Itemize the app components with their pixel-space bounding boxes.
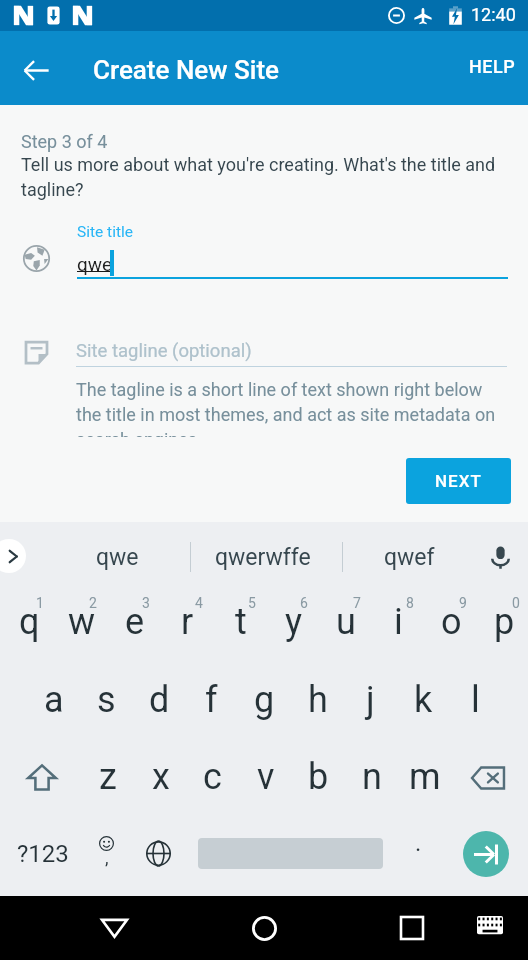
button[interactable]: r [161,576,214,653]
staticText: b [308,756,329,798]
button[interactable] [190,818,390,888]
staticText: HELP [469,56,516,77]
staticText: NEXT [435,471,482,491]
button[interactable]: Switch keyboard [472,910,508,946]
staticText: v [257,756,275,798]
staticText: i [394,601,403,643]
button[interactable]: NEXT [406,458,511,504]
button[interactable]: Change language [134,818,182,888]
button[interactable]: qwerwffe [203,534,323,580]
button[interactable]: . [395,814,441,884]
staticText: j [366,679,375,721]
staticText: , [105,847,109,868]
button[interactable]: Home [246,910,282,946]
staticText: Site title [77,223,134,241]
button[interactable]: Recent apps [394,910,430,946]
staticText: c [203,756,222,798]
button[interactable]: qwef [349,534,469,580]
staticText: q [19,601,40,643]
staticText: f [205,679,218,721]
staticText: t [235,601,247,643]
staticText: x [152,756,170,798]
button[interactable]: l [449,656,502,733]
staticText: k [414,679,433,721]
button[interactable]: j [344,656,397,733]
button[interactable]: i [372,576,425,653]
button[interactable]: c [186,733,239,810]
staticText: The tagline is a short line of text show… [76,379,496,437]
button[interactable]: v [239,733,292,810]
staticText: e [125,601,145,643]
staticText: ?123 [17,840,69,868]
staticText: w [68,601,96,643]
button[interactable]: Emoji [82,819,130,889]
button[interactable]: k [397,656,450,733]
button[interactable]: Voice input [479,536,521,578]
staticText: h [308,679,328,721]
button[interactable]: HELP [461,50,524,83]
staticText: g [254,679,275,721]
button[interactable]: n [345,733,398,810]
staticText: 8 [406,595,414,611]
staticText: s [97,679,116,721]
staticText: qwef [384,544,435,571]
staticText: m [409,756,441,798]
button[interactable]: b [292,733,345,810]
button[interactable]: y [267,576,320,653]
button[interactable]: u [319,576,372,653]
button[interactable]: s [80,656,133,733]
staticText: Tell us more about what you're creating.… [21,154,511,201]
button[interactable]: z [81,733,134,810]
staticText: 2 [89,595,97,611]
button[interactable]: a [27,656,80,733]
staticText: 0 [512,595,520,611]
staticText: o [441,601,462,643]
button[interactable]: Backspace [450,739,525,816]
staticText: Site tagline (optional) [76,340,252,362]
button[interactable]: Enter [463,831,509,877]
button[interactable]: Shift [4,739,79,816]
staticText: z [99,756,117,798]
staticText: d [149,679,170,721]
staticText: qwe [77,253,113,275]
button[interactable]: g [238,656,291,733]
staticText: p [494,601,515,643]
button[interactable]: d [133,656,186,733]
button[interactable]: q [3,576,56,653]
staticText: 12:40 [471,4,516,25]
staticText: 6 [300,595,308,611]
button[interactable]: More suggestions [0,539,26,573]
staticText: 9 [459,595,467,611]
staticText: 1 [36,595,44,611]
staticText: qwerwffe [215,544,311,571]
staticText: 4 [195,595,203,611]
staticText: 5 [248,595,256,611]
staticText: 3 [142,595,150,611]
staticText: . [415,829,422,857]
staticText: n [362,756,382,798]
button[interactable]: o [425,576,478,653]
button[interactable]: ?123 [3,819,83,889]
button[interactable]: e [108,576,161,653]
button[interactable]: h [291,656,344,733]
button[interactable]: w [55,576,108,653]
button[interactable]: m [398,733,451,810]
button[interactable]: Back [10,44,62,96]
staticText: Create New Site [93,55,279,85]
staticText: u [336,601,356,643]
staticText: r [181,601,194,643]
button[interactable]: x [134,733,187,810]
staticText: y [285,601,303,643]
staticText: a [44,679,64,721]
button[interactable]: qwe [57,534,177,580]
button[interactable]: t [214,576,267,653]
button[interactable]: Back [96,909,132,945]
button[interactable]: p [478,576,528,653]
staticText: 7 [353,595,361,611]
staticText: Step 3 of 4 [21,131,108,152]
staticText: l [471,679,480,721]
button[interactable]: f [185,656,238,733]
staticText: qwe [96,544,139,571]
